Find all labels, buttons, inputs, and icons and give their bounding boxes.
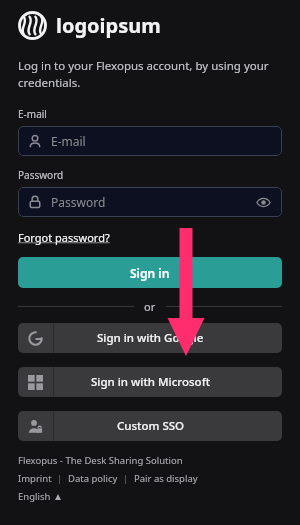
button[interactable]: Password	[18, 187, 282, 217]
button[interactable]: Show password	[254, 193, 272, 211]
button[interactable]: Sign in with Microsoft	[18, 367, 282, 397]
button[interactable]: Pair as display	[134, 472, 198, 485]
staticText: Pair as display	[134, 472, 198, 485]
staticText: English	[18, 490, 51, 503]
button[interactable]: Forgot password?	[18, 230, 110, 245]
button[interactable]: Custom SSO	[18, 411, 282, 441]
staticText: Password	[18, 168, 64, 182]
button[interactable]: Sign in with Google	[18, 323, 282, 353]
button[interactable]: Imprint	[18, 472, 52, 485]
staticText: Password	[51, 194, 106, 210]
button[interactable]: English	[18, 490, 61, 503]
staticText: Sign in with Microsoft	[91, 374, 211, 390]
staticText: E-mail	[51, 133, 86, 149]
staticText: |	[118, 472, 134, 485]
staticText: Log in to your Flexopus account, by usin…	[18, 58, 282, 91]
staticText: Sign in with Google	[97, 330, 204, 346]
button[interactable]: Sign in	[18, 257, 282, 288]
staticText: Custom SSO	[117, 418, 185, 434]
staticText: Data policy	[68, 472, 118, 485]
staticText: E-mail	[18, 107, 47, 121]
staticText: Sign in	[130, 265, 170, 281]
staticText: |	[52, 472, 68, 485]
button[interactable]: E-mail	[18, 126, 282, 156]
button[interactable]: logoipsum	[18, 11, 161, 40]
button[interactable]: Data policy	[68, 472, 118, 485]
staticText: Forgot password?	[18, 230, 110, 245]
staticText: Imprint	[18, 472, 52, 485]
staticText: or	[144, 299, 156, 313]
staticText: Flexopus - The Desk Sharing Solution	[18, 454, 183, 467]
staticText: logoipsum	[56, 12, 161, 39]
